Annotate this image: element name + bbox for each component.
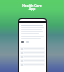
button[interactable] <box>21 47 44 50</box>
button[interactable] <box>21 63 44 66</box>
staticText: Health Care App <box>0 3 64 11</box>
button[interactable] <box>21 55 44 58</box>
button[interactable] <box>21 59 44 62</box>
button[interactable] <box>21 41 24 43</box>
button[interactable] <box>26 41 29 43</box>
button[interactable] <box>21 51 44 54</box>
